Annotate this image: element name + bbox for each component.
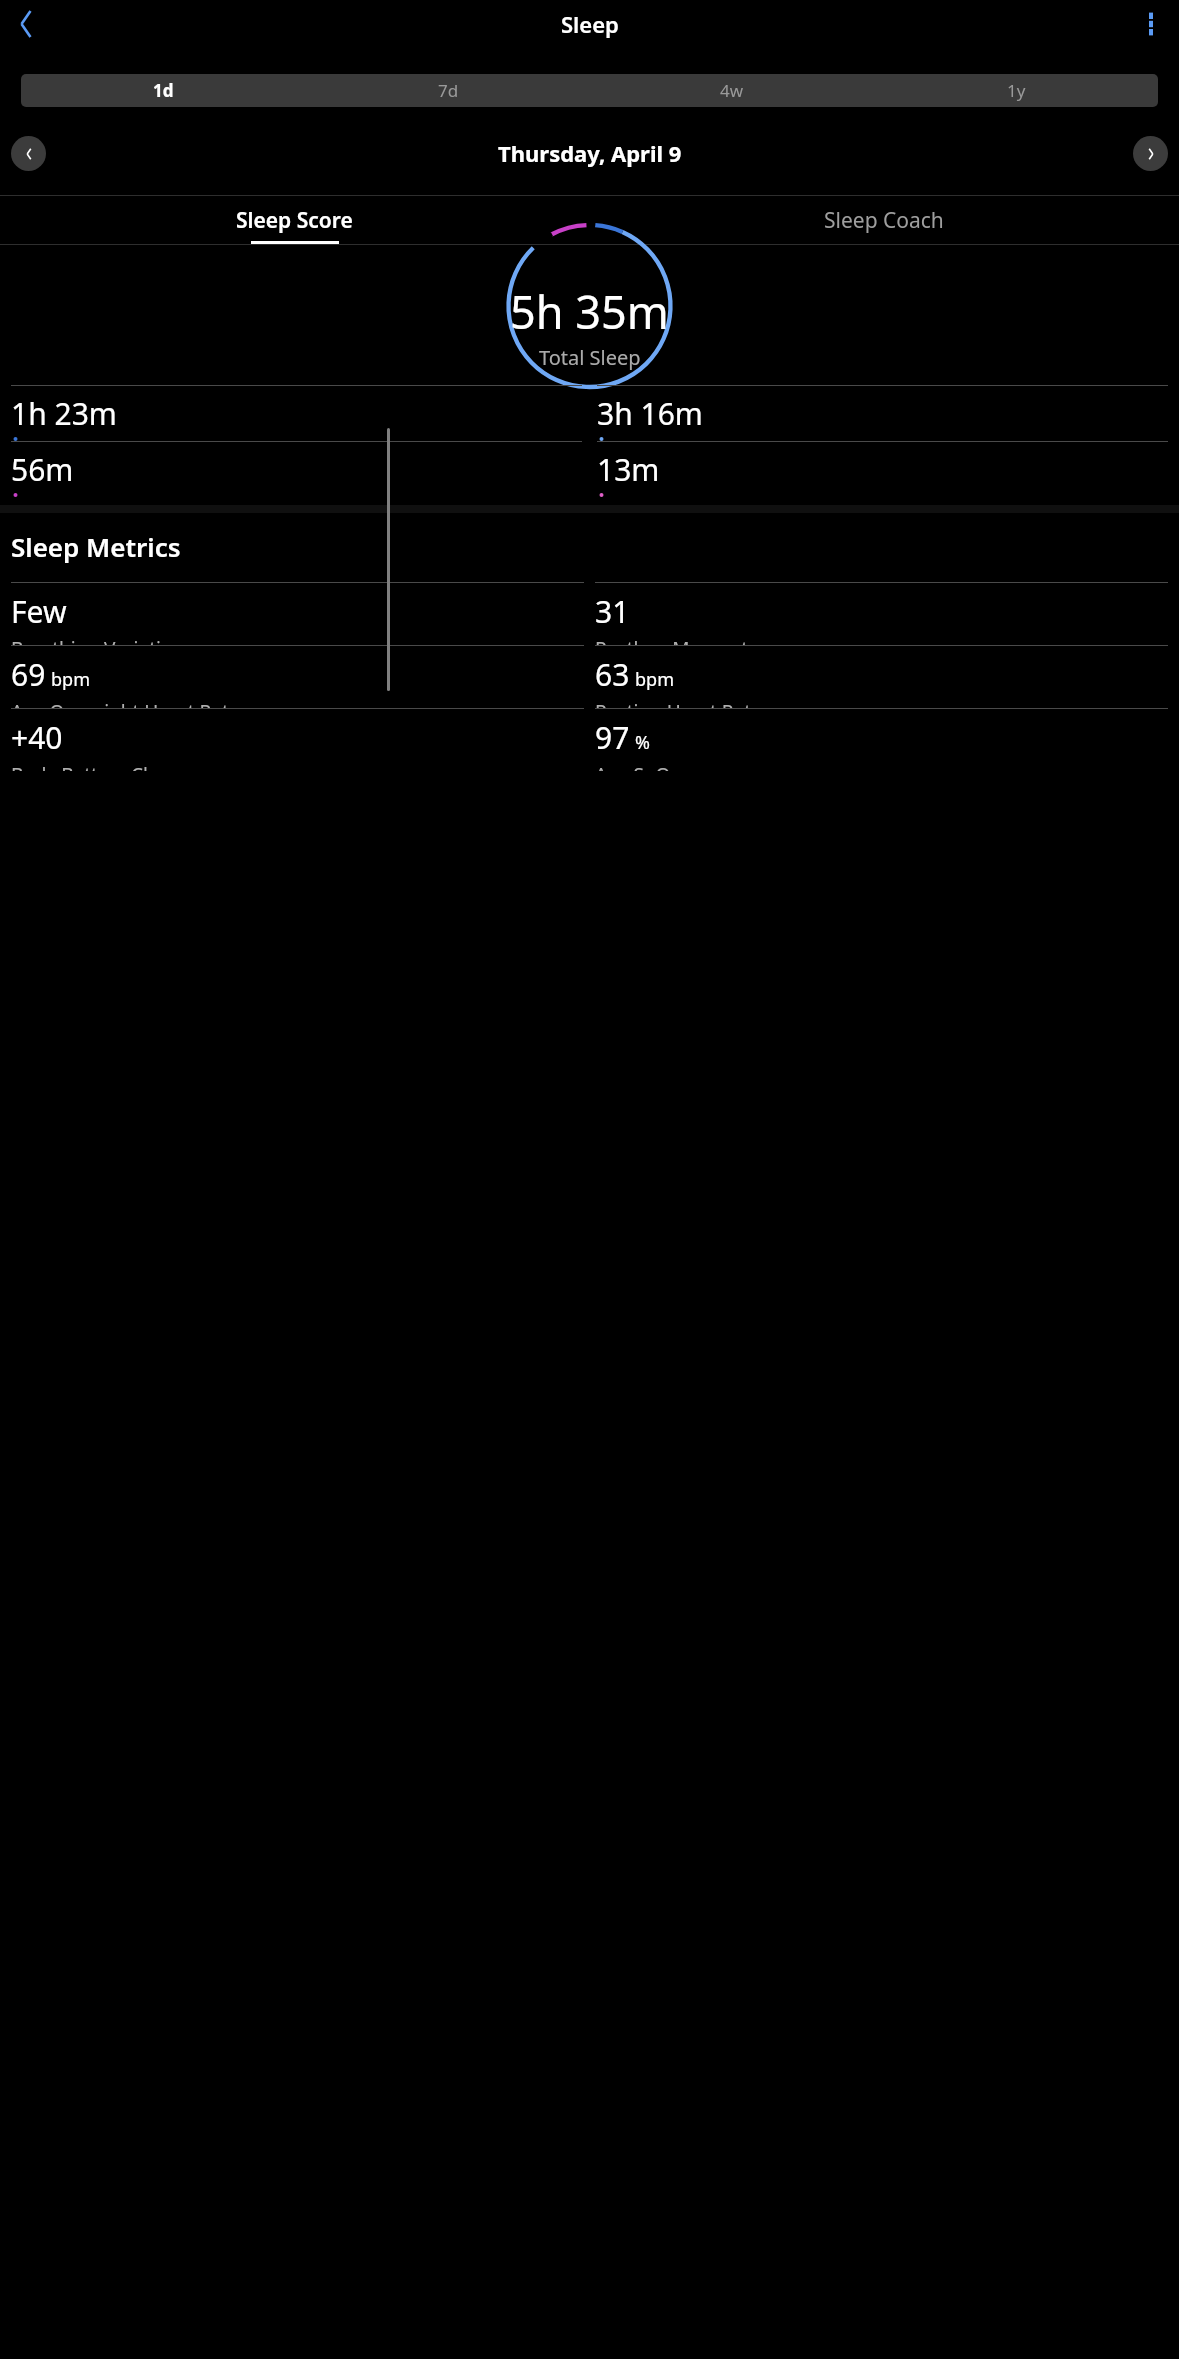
button[interactable]: 3h 16m bbox=[597, 386, 1168, 441]
button[interactable]: More options bbox=[1129, 2, 1173, 46]
button[interactable]: 13m bbox=[597, 442, 1168, 497]
staticText: Few bbox=[11, 591, 67, 632]
staticText: % bbox=[635, 730, 650, 755]
button[interactable]: Sleep Score bbox=[0, 196, 589, 244]
staticText: 31 bbox=[595, 591, 630, 632]
staticText: Sleep Metrics bbox=[11, 529, 181, 564]
staticText: Thursday, April 9 bbox=[498, 138, 682, 168]
button[interactable]: 1y bbox=[874, 74, 1158, 107]
staticText: 63 bbox=[595, 654, 630, 695]
button[interactable]: Sleep Coach bbox=[589, 196, 1179, 244]
staticText: +40 bbox=[11, 717, 63, 758]
button[interactable]: Previous day bbox=[11, 136, 46, 171]
button[interactable]: 1d bbox=[21, 74, 306, 107]
button[interactable]: 4w bbox=[590, 74, 874, 107]
staticText: 69 bbox=[11, 654, 46, 695]
button[interactable]: Next day bbox=[1133, 136, 1168, 171]
staticText: 13m bbox=[597, 449, 660, 490]
staticText: 7d bbox=[438, 79, 459, 102]
staticText: 1y bbox=[1007, 79, 1026, 102]
staticText: Restless Moments bbox=[595, 636, 758, 645]
button[interactable]: 56m bbox=[11, 442, 582, 497]
button[interactable]: 7d bbox=[306, 74, 590, 107]
staticText: Resting Heart Rate bbox=[595, 699, 762, 708]
button[interactable]: 97 bbox=[595, 709, 1168, 771]
staticText: 1h 23m bbox=[11, 393, 117, 434]
staticText: bpm bbox=[51, 667, 90, 692]
staticText: Total Sleep bbox=[539, 344, 641, 371]
staticText: bpm bbox=[635, 667, 674, 692]
staticText: 56m bbox=[11, 449, 74, 490]
staticText: Sleep Coach bbox=[824, 206, 944, 235]
staticText: Sleep bbox=[561, 9, 619, 39]
staticText: 5h 35m bbox=[510, 281, 669, 342]
staticText: Avg Overnight Heart Rate bbox=[11, 699, 240, 708]
staticText: 3h 16m bbox=[597, 393, 703, 434]
staticText: Body Battery Change bbox=[11, 762, 200, 771]
button[interactable]: 69 bbox=[11, 646, 584, 708]
staticText: Breathing Variations bbox=[11, 636, 194, 645]
button[interactable]: 63 bbox=[595, 646, 1168, 708]
staticText: Avg SpO₂ bbox=[595, 762, 678, 771]
button[interactable]: 31 bbox=[595, 583, 1168, 645]
staticText: 4w bbox=[720, 79, 744, 102]
staticText: 1d bbox=[153, 79, 174, 102]
staticText: Sleep Score bbox=[236, 206, 353, 235]
button[interactable]: Back bbox=[4, 2, 48, 46]
staticText: 97 bbox=[595, 717, 630, 758]
button[interactable]: 1h 23m bbox=[11, 386, 582, 441]
button[interactable]: Few bbox=[11, 583, 584, 645]
button[interactable]: +40 bbox=[11, 709, 584, 771]
